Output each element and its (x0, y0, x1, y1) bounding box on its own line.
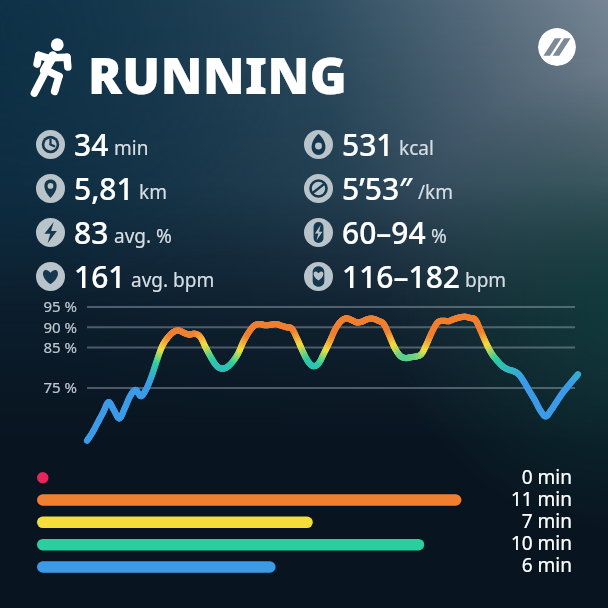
staticText: 60–94 (342, 212, 426, 253)
staticText: 5’53″ (342, 168, 413, 209)
staticText: bpm (465, 267, 507, 293)
staticText: 85 % (18, 337, 77, 357)
staticText: 6 min (440, 552, 572, 578)
button[interactable]: App logo (538, 28, 576, 66)
staticText: 531 (342, 124, 394, 165)
staticText: 34 (74, 124, 109, 165)
staticText: % (431, 223, 447, 249)
button[interactable]: 7 min (440, 508, 572, 534)
staticText: 83 (74, 212, 109, 253)
button[interactable]: 5’53″ (304, 168, 453, 209)
staticText: /km (418, 179, 453, 205)
button[interactable]: 0 min (440, 464, 572, 490)
staticText: RUNNING (88, 41, 348, 109)
staticText: 75 % (18, 377, 77, 397)
staticText: min (114, 135, 149, 161)
staticText: 90 % (18, 317, 77, 337)
staticText: avg. bpm (131, 267, 215, 293)
staticText: 0 min (440, 464, 572, 490)
button[interactable]: 161 (36, 256, 215, 297)
button[interactable]: 116–182 (304, 256, 507, 297)
staticText: 10 min (440, 530, 572, 556)
staticText: 95 % (18, 296, 77, 316)
staticText: avg. % (114, 223, 172, 249)
button[interactable]: 60–94 (304, 212, 447, 253)
button[interactable]: 34 (36, 124, 149, 165)
button[interactable]: 5,81 (36, 168, 167, 209)
button[interactable]: 6 min (440, 552, 572, 578)
staticText: 116–182 (342, 256, 460, 297)
staticText: 7 min (440, 508, 572, 534)
button[interactable]: 83 (36, 212, 172, 253)
staticText: 11 min (440, 486, 572, 512)
staticText: 5,81 (74, 168, 134, 209)
staticText: 161 (74, 256, 126, 297)
staticText: kcal (399, 135, 434, 161)
button[interactable]: 11 min (440, 486, 572, 512)
button[interactable]: 531 (304, 124, 434, 165)
button[interactable]: 10 min (440, 530, 572, 556)
staticText: km (139, 179, 167, 205)
